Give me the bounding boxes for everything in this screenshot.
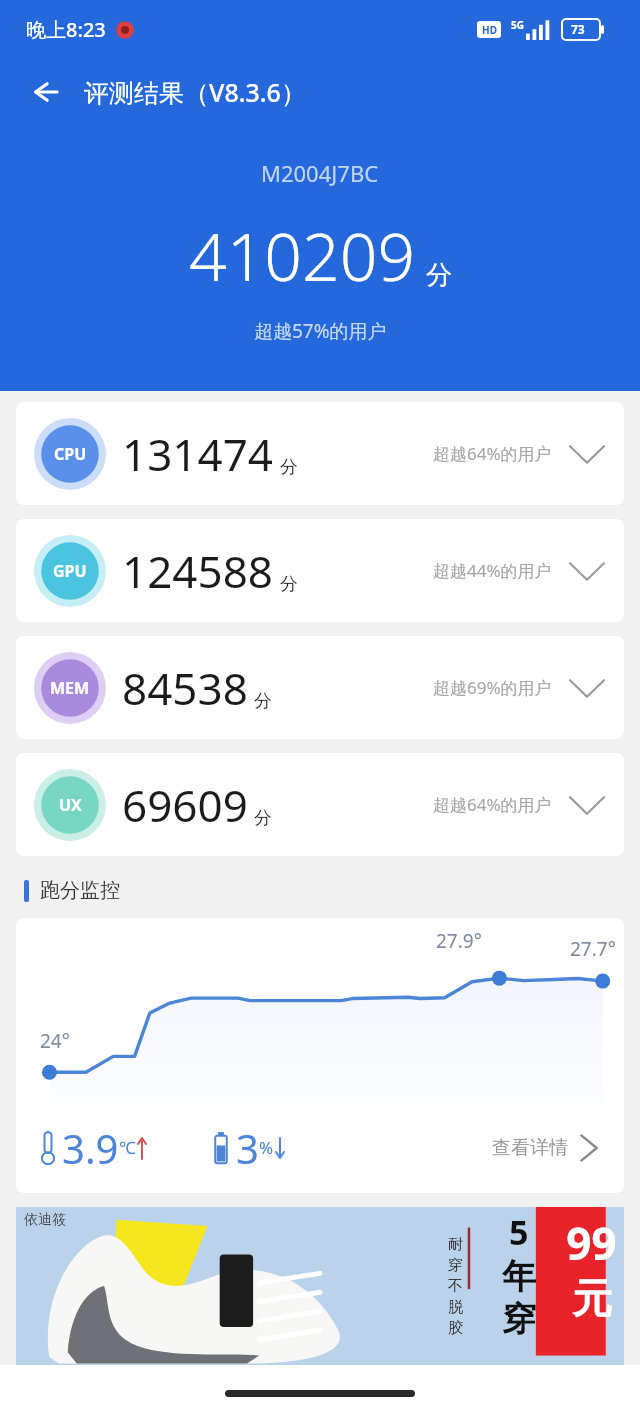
staticText: 3.9 (62, 1121, 119, 1175)
button[interactable]: GPU (16, 519, 624, 622)
staticText: 晚上8:23 (26, 16, 106, 43)
staticText: 73 (571, 21, 585, 37)
staticText: 脱 (448, 1298, 463, 1317)
staticText: 69609 (122, 775, 248, 835)
staticText: 超越44%的用户 (433, 559, 552, 582)
staticText: 分 (280, 456, 298, 479)
staticText: 5G (511, 18, 524, 32)
staticText: 27.7° (570, 936, 616, 962)
staticText: 不 (448, 1277, 463, 1296)
staticText: M2004J7BC (261, 158, 379, 188)
staticText: CPU (54, 443, 87, 465)
button[interactable]: Advertisement (16, 1207, 624, 1365)
staticText: 耐 (448, 1235, 463, 1254)
staticText: 超越57%的用户 (254, 318, 387, 344)
staticText: 分 (254, 807, 272, 830)
staticText: 27.9° (436, 928, 482, 954)
staticText: GPU (53, 560, 87, 582)
button[interactable]: UX (16, 753, 624, 856)
staticText: 元 (572, 1273, 612, 1323)
staticText: 分 (426, 259, 452, 292)
staticText: 查看详情 (492, 1136, 568, 1160)
staticText: 跑分监控 (40, 878, 120, 903)
staticText: 穿 (502, 1298, 536, 1341)
staticText: 依迪筱 (24, 1211, 66, 1229)
staticText: ℃ (119, 1136, 136, 1159)
staticText: 99 (566, 1213, 617, 1273)
staticText: 131474 (122, 424, 274, 484)
button[interactable]: 查看详情 (486, 1123, 606, 1173)
staticText: 124588 (122, 541, 274, 601)
staticText: HD (482, 23, 497, 37)
staticText: 24° (40, 1028, 70, 1054)
staticText: 410209 (189, 210, 416, 300)
staticText: 3 (236, 1121, 259, 1175)
staticText: 84538 (122, 658, 248, 718)
staticText: 分 (254, 690, 272, 713)
staticText: 分 (280, 573, 298, 596)
button[interactable]: Back (18, 66, 70, 118)
staticText: MEM (50, 677, 90, 699)
staticText: 胶 (448, 1319, 463, 1338)
staticText: 超越69%的用户 (433, 676, 552, 699)
staticText: UX (59, 794, 82, 816)
staticText: 评测结果（V8.3.6） (84, 75, 306, 109)
button[interactable]: CPU (16, 402, 624, 505)
staticText: 超越64%的用户 (433, 793, 552, 816)
button[interactable]: MEM (16, 636, 624, 739)
staticText: 超越64%的用户 (433, 442, 552, 465)
staticText: 年 (502, 1255, 536, 1298)
staticText: 穿 (448, 1256, 463, 1275)
staticText: % (259, 1136, 274, 1159)
staticText: 5 (509, 1209, 529, 1255)
